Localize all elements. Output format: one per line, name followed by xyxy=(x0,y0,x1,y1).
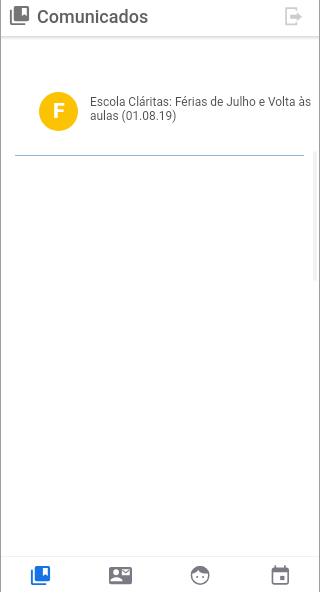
button[interactable]: Sair xyxy=(280,0,312,31)
button[interactable]: F xyxy=(0,92,320,131)
button[interactable]: Contatos xyxy=(80,557,160,592)
staticText: F xyxy=(53,99,65,124)
button[interactable]: Agenda xyxy=(240,557,320,592)
button[interactable]: Perfil xyxy=(160,557,240,592)
button[interactable]: Comunicados xyxy=(0,557,80,592)
staticText: Comunicados xyxy=(37,6,149,27)
button[interactable]: Comunicados xyxy=(8,4,31,27)
staticText: Escola Cláritas: Férias de Julho e Volta… xyxy=(90,95,315,123)
